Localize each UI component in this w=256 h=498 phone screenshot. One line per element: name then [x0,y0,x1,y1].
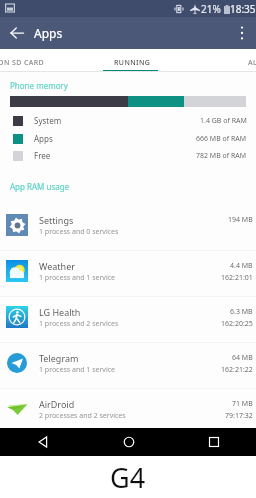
staticText: 782 MB of RAM [196,151,247,161]
button[interactable]: ON SD CARD [0,51,76,74]
staticText: Settings [39,214,74,226]
staticText: 18:35 [230,2,256,16]
staticText: System [34,115,62,126]
button[interactable]: More options [230,21,254,45]
staticText: 1 process and 1 service [39,273,116,283]
staticText: 194 MB [228,215,253,225]
staticText: 4.4 MB [230,261,253,271]
staticText: 162:21:01 [221,273,253,283]
button[interactable]: System [0,112,256,130]
staticText: RUNNING [114,58,151,68]
staticText: 1.4 GB of RAM [200,116,247,126]
button[interactable]: Free [0,147,256,165]
button[interactable]: Telegram [0,340,256,386]
staticText: 79:17:32 [225,411,253,421]
staticText: LG Health [39,306,81,318]
staticText: Telegram [39,352,79,364]
button[interactable]: Apps [0,130,256,148]
staticText: Weather [39,260,75,272]
staticText: ALL [248,58,256,68]
button[interactable]: AirDroid [0,386,256,432]
staticText: Apps [34,25,63,41]
button[interactable]: Back [0,428,86,456]
staticText: 1 process and 0 services [39,227,119,237]
button[interactable]: Weather [0,248,256,294]
button[interactable]: Navigate up [5,21,29,45]
button[interactable]: RUNNING [77,49,187,72]
staticText: G4 [110,459,146,496]
staticText: 6.3 MB [230,307,253,317]
staticText: AirDroid [39,398,75,410]
staticText: 2 processes and 2 services [39,411,126,421]
staticText: 21% [201,2,221,16]
staticText: Phone memory [10,80,68,91]
button[interactable]: Settings [0,202,256,248]
button[interactable]: LG Health [0,294,256,340]
staticText: Free [34,150,51,161]
staticText: Apps [34,133,53,144]
button[interactable]: ALL [200,49,256,72]
staticText: 71 MB [232,399,253,409]
staticText: 666 MB of RAM [196,134,247,144]
staticText: 162:21:22 [221,365,253,375]
staticText: 64 MB [232,353,253,363]
button[interactable]: Home [86,428,171,456]
staticText: 1 process and 1 service [39,365,116,375]
staticText: App RAM usage [10,181,70,192]
staticText: 162:20:25 [221,319,253,329]
button[interactable]: Recent apps [171,428,256,456]
staticText: 1 process and 2 services [39,319,119,329]
staticText: ON SD CARD [0,58,45,68]
